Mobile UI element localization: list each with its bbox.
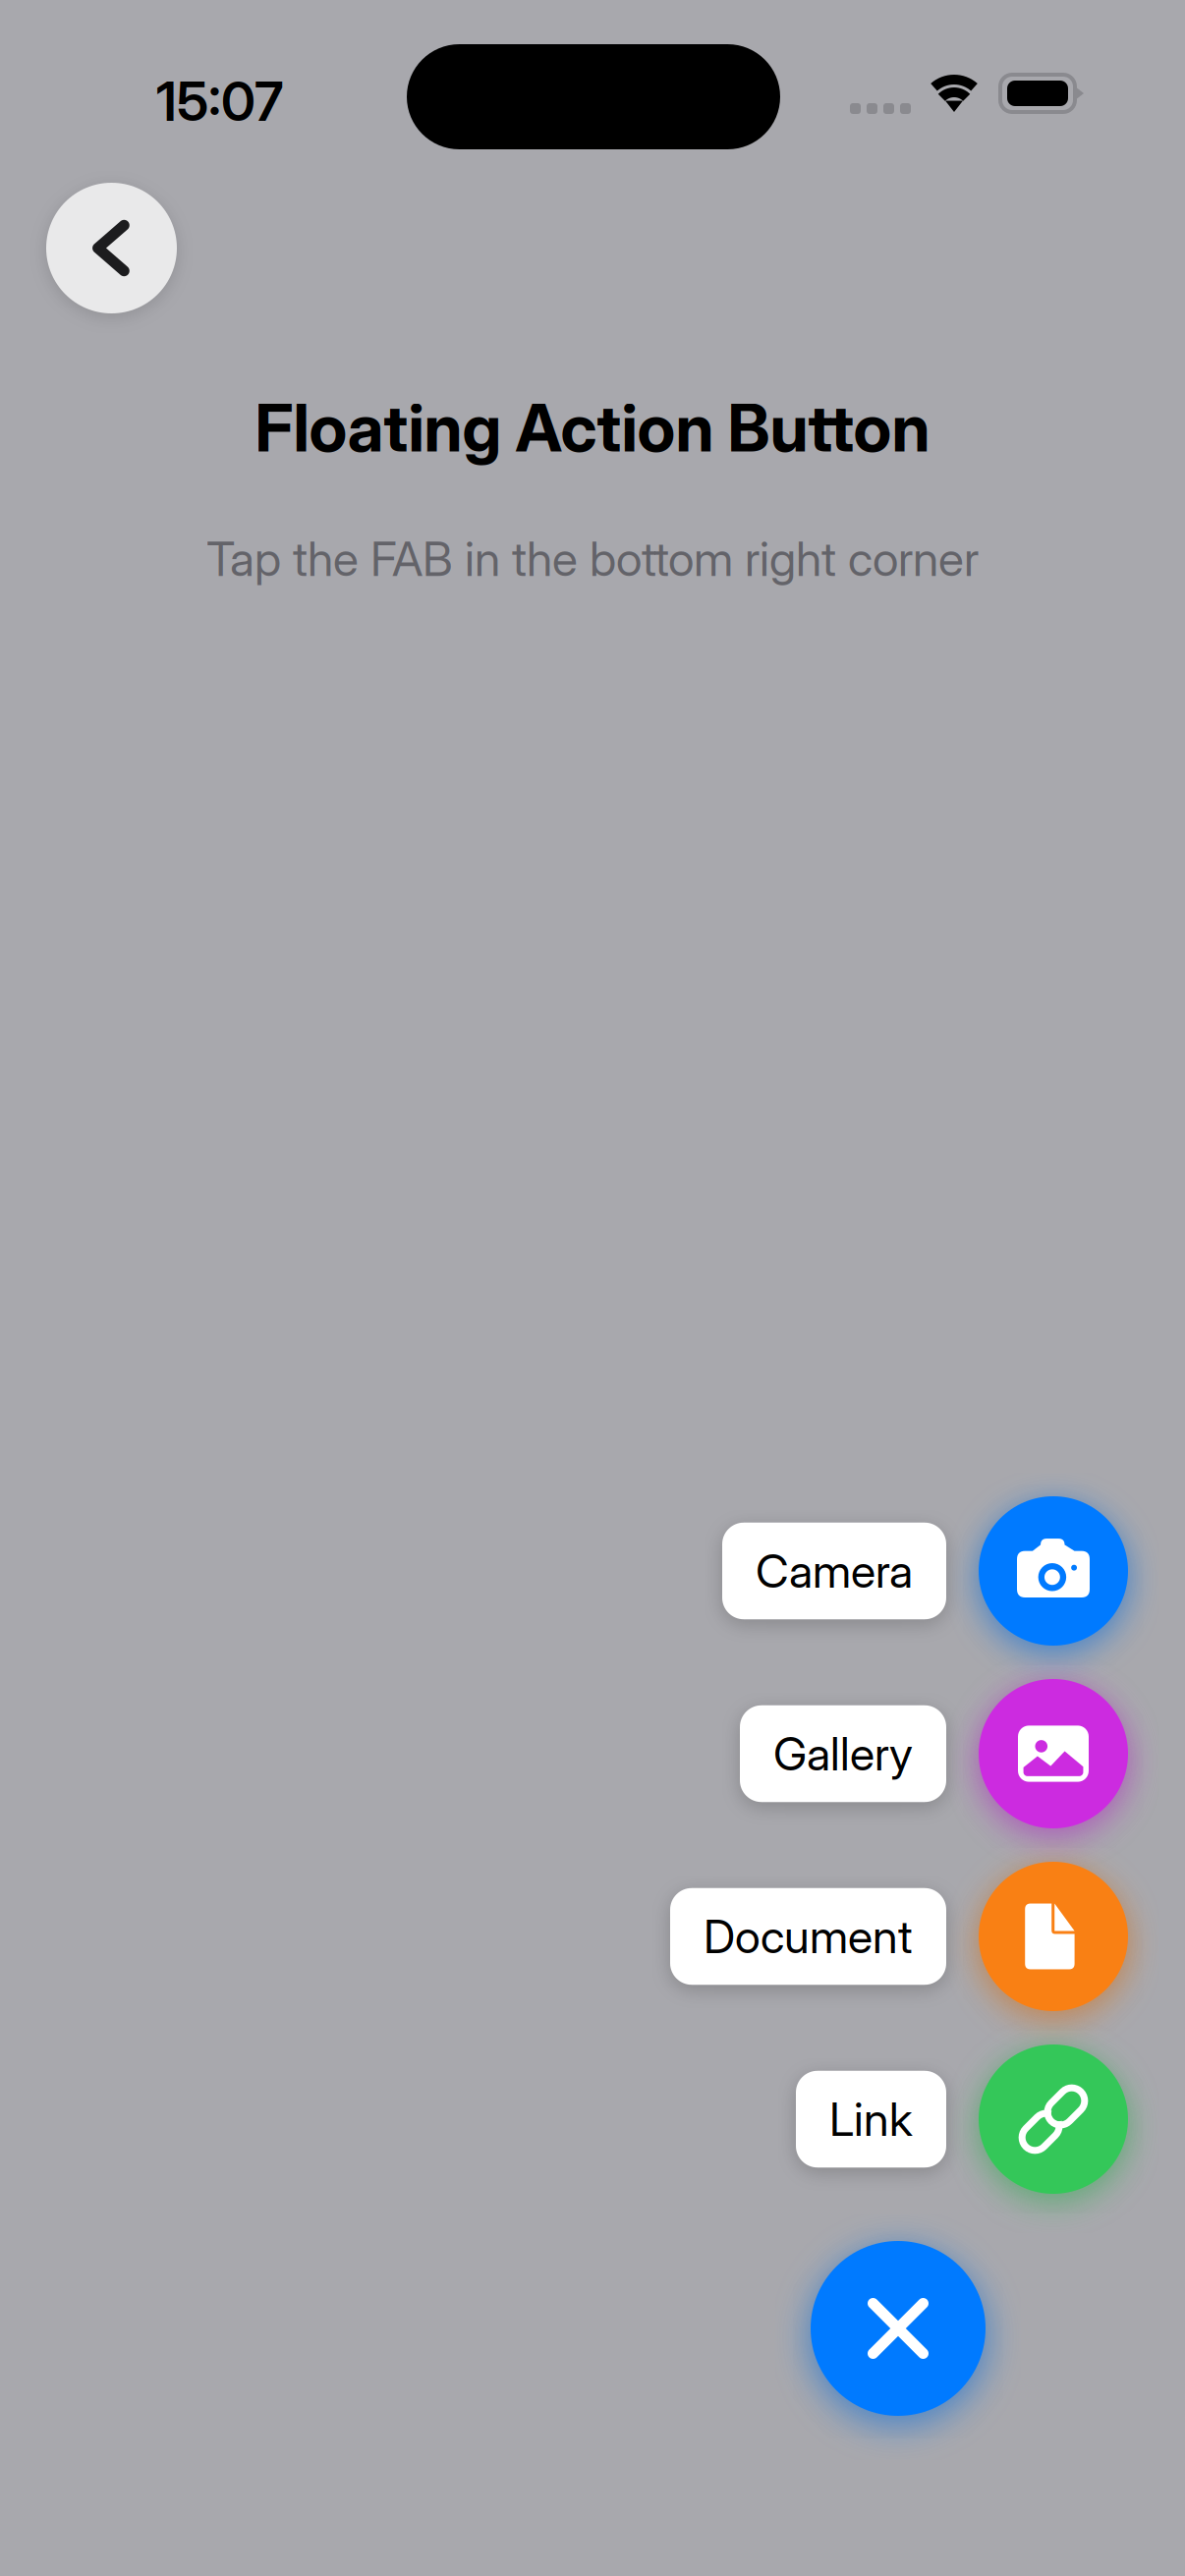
- button[interactable]: Document: [670, 1888, 946, 1985]
- staticText: 15:07: [156, 69, 283, 134]
- button[interactable]: Close menu: [811, 2241, 986, 2416]
- button[interactable]: Back: [46, 183, 177, 313]
- staticText: Gallery: [773, 1726, 913, 1781]
- staticText: Tap the FAB in the bottom right corner: [206, 530, 979, 587]
- staticText: Document: [704, 1909, 913, 1964]
- button[interactable]: Camera: [979, 1496, 1128, 1646]
- staticText: Link: [829, 2091, 913, 2147]
- staticText: Floating Action Button: [255, 388, 930, 467]
- button[interactable]: Document: [979, 1862, 1128, 2011]
- button[interactable]: Link: [796, 2071, 946, 2168]
- staticText: Camera: [756, 1543, 913, 1599]
- button[interactable]: Gallery: [740, 1705, 946, 1802]
- button[interactable]: Gallery: [979, 1679, 1128, 1828]
- button[interactable]: Camera: [722, 1523, 946, 1619]
- button[interactable]: Link: [979, 2044, 1128, 2194]
